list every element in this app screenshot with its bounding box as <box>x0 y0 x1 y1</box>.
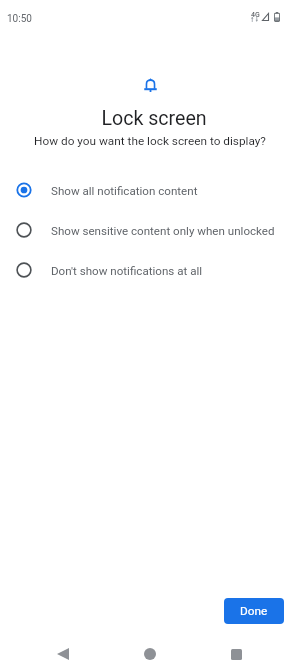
staticText: Show sensitive content only when unlocke… <box>51 224 275 238</box>
button[interactable]: Show sensitive content only when unlocke… <box>0 210 300 250</box>
staticText: Don't show notifications at all <box>51 264 203 278</box>
staticText: How do you want the lock screen to displ… <box>0 134 300 148</box>
button[interactable]: Done <box>224 598 284 624</box>
staticText: 4G <box>251 11 260 19</box>
button[interactable]: Home <box>131 635 169 672</box>
staticText: Done <box>240 604 268 618</box>
staticText: Lock screen <box>4 107 300 130</box>
button[interactable]: Back <box>44 635 82 672</box>
staticText: Show all notification content <box>51 184 198 198</box>
button[interactable]: Don't show notifications at all <box>0 250 300 290</box>
button[interactable]: Recents <box>217 635 255 672</box>
button[interactable]: Show all notification content <box>0 170 300 210</box>
staticText: 10:50 <box>7 13 32 25</box>
